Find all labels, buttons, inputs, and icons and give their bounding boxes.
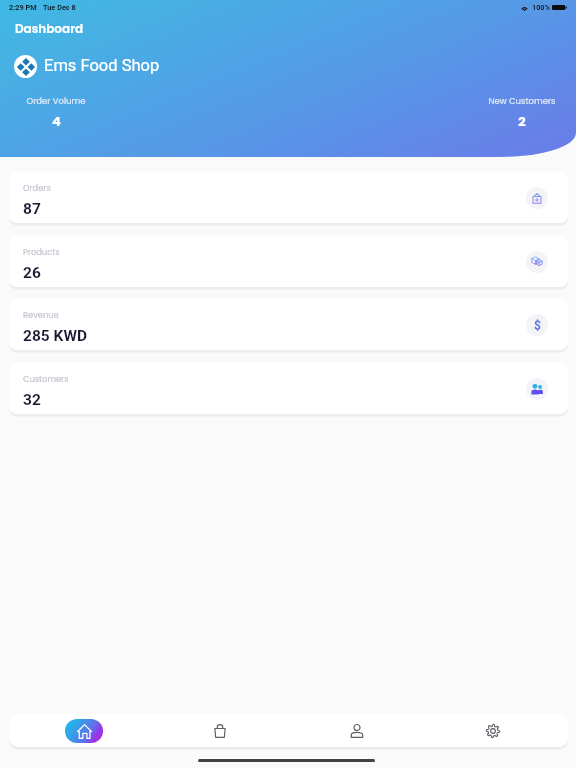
staticText: 32 xyxy=(23,391,41,409)
staticText: New Customers xyxy=(488,95,556,107)
staticText: Orders xyxy=(23,182,51,194)
staticText: 285 KWD xyxy=(23,327,88,345)
staticText: Order Volume xyxy=(26,95,86,107)
staticText: 26 xyxy=(23,264,41,282)
staticText: Tue Dec 8 xyxy=(43,3,76,12)
button[interactable]: Customers xyxy=(9,363,568,414)
staticText: Revenue xyxy=(23,309,59,321)
button[interactable]: Products xyxy=(9,236,568,287)
button[interactable]: Shop xyxy=(201,716,239,745)
button[interactable]: Revenue xyxy=(9,299,568,350)
button[interactable]: Settings xyxy=(474,716,512,745)
button[interactable]: Home xyxy=(65,719,103,743)
staticText: 4 xyxy=(52,112,61,130)
staticText: Dashboard xyxy=(15,20,84,37)
staticText: 100% xyxy=(532,3,550,12)
button[interactable]: Orders xyxy=(9,172,568,223)
staticText: $ xyxy=(534,319,541,331)
staticText: Products xyxy=(23,246,60,258)
staticText: 2:29 PM xyxy=(9,3,37,12)
staticText: 87 xyxy=(23,200,41,218)
staticText: Ems Food Shop xyxy=(44,56,160,75)
button[interactable]: Profile xyxy=(338,716,376,745)
staticText: 2 xyxy=(518,112,526,130)
staticText: Customers xyxy=(23,373,69,385)
